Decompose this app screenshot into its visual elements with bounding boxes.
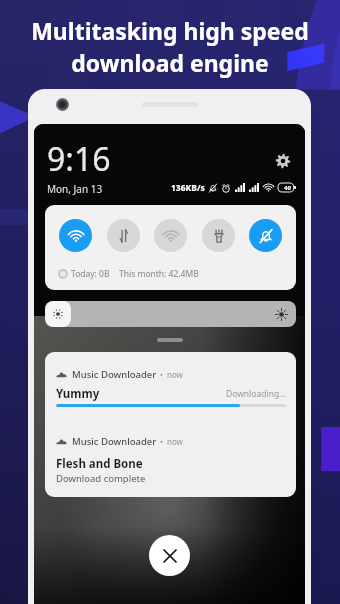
- staticText: now: [167, 436, 183, 447]
- staticText: Flesh and Bone: [56, 456, 143, 472]
- staticText: 9:16: [47, 137, 111, 181]
- button[interactable]: Flashlight: [202, 219, 235, 252]
- button[interactable]: Hotspot: [154, 219, 187, 252]
- staticText: 40: [284, 184, 291, 192]
- staticText: download engine: [71, 47, 269, 78]
- button[interactable]: Settings: [272, 150, 294, 172]
- button[interactable]: Music Downloader: [45, 352, 296, 414]
- staticText: •: [160, 436, 164, 447]
- staticText: Today: 0B: [71, 268, 110, 280]
- button[interactable]: Close: [149, 535, 190, 576]
- staticText: Mon, Jan 13: [47, 182, 103, 196]
- staticText: Download complete: [56, 472, 146, 485]
- staticText: 136KB/s: [171, 182, 205, 193]
- staticText: Music Downloader: [72, 368, 157, 381]
- staticText: •: [160, 369, 164, 380]
- button[interactable]: Wi-Fi: [59, 219, 92, 252]
- button[interactable]: Silent mode: [249, 219, 282, 252]
- staticText: Downloading...: [226, 388, 286, 400]
- staticText: Music Downloader: [72, 435, 157, 448]
- staticText: Multitasking high speed: [31, 15, 309, 46]
- button[interactable]: Brightness: [45, 301, 296, 327]
- staticText: now: [167, 369, 183, 380]
- button[interactable]: Mobile data: [107, 219, 140, 252]
- staticText: This month: 42.4MB: [119, 268, 199, 280]
- staticText: Yummy: [56, 386, 100, 402]
- button[interactable]: Music Downloader: [45, 414, 296, 497]
